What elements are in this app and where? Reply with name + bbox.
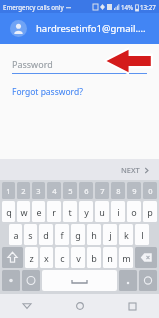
staticText: e [36, 206, 42, 218]
staticText: w [20, 206, 28, 218]
staticText: 9 [132, 186, 137, 196]
staticText: c [60, 252, 65, 264]
button[interactable]: hardresetinfo1@gmail.... [0, 13, 159, 44]
staticText: g [75, 229, 81, 241]
staticText: b [91, 252, 97, 264]
staticText: i [117, 206, 120, 218]
button[interactable]: k [119, 224, 133, 245]
button[interactable]: 9 [127, 182, 141, 199]
button[interactable]: Period [119, 270, 137, 291]
staticText: f [60, 229, 64, 241]
staticText: Forgot password? [12, 86, 83, 98]
staticText: d [43, 229, 49, 241]
button[interactable]: 7 [95, 182, 109, 199]
button[interactable]: v [71, 247, 85, 268]
staticText: 0 [148, 186, 153, 196]
button[interactable]: m [119, 247, 133, 268]
button[interactable]: s [24, 224, 37, 245]
staticText: k [124, 229, 129, 241]
button[interactable]: o [127, 201, 141, 222]
button[interactable]: i [111, 201, 125, 222]
staticText: 4 [52, 186, 57, 196]
staticText: y [84, 206, 89, 218]
button[interactable]: 3 [32, 182, 45, 199]
staticText: a [13, 229, 19, 241]
button[interactable]: Back [0, 294, 53, 318]
staticText: 3 [36, 186, 41, 196]
button[interactable]: z [25, 247, 38, 268]
button[interactable]: d [39, 224, 53, 245]
button[interactable]: 2 [17, 182, 30, 199]
button[interactable]: Shift [2, 247, 23, 268]
staticText: v [76, 252, 81, 264]
staticText: n [107, 252, 113, 264]
button[interactable]: x [40, 247, 53, 268]
staticText: 2 [21, 186, 26, 196]
staticText: 14% [121, 3, 134, 11]
button[interactable]: Recents [106, 294, 159, 318]
button[interactable]: q [2, 201, 15, 222]
button[interactable]: h [87, 224, 101, 245]
button[interactable]: u [95, 201, 109, 222]
button[interactable]: 5 [63, 182, 77, 199]
button[interactable]: Enter [139, 270, 157, 291]
staticText: z [29, 252, 34, 264]
button[interactable]: c [55, 247, 69, 268]
button[interactable]: Home [53, 294, 106, 318]
staticText: 8 [116, 186, 121, 196]
button[interactable]: r [47, 201, 61, 222]
button[interactable]: Symbols [2, 270, 20, 291]
staticText: hardresetinfo1@gmail.... [36, 22, 146, 35]
button[interactable]: a [9, 224, 22, 245]
button[interactable]: 6 [79, 182, 93, 199]
button[interactable]: 8 [111, 182, 125, 199]
staticText: 6 [84, 186, 89, 196]
staticText: u [99, 206, 105, 218]
button[interactable]: Forgot password? [12, 86, 83, 98]
button[interactable]: Space [42, 270, 117, 291]
staticText: s [28, 229, 33, 241]
staticText: 7 [100, 186, 105, 196]
staticText: Emergency calls only [3, 3, 64, 11]
button[interactable]: l [135, 224, 149, 245]
staticText: j [109, 229, 112, 241]
button[interactable]: NEXT [111, 161, 159, 179]
button[interactable]: n [103, 247, 117, 268]
button[interactable]: y [79, 201, 93, 222]
staticText: h [91, 229, 97, 241]
staticText: p [147, 206, 153, 218]
button[interactable]: g [71, 224, 85, 245]
staticText: q [6, 206, 12, 218]
button[interactable]: t [63, 201, 77, 222]
staticText: NEXT [121, 165, 140, 175]
staticText: t [68, 206, 72, 218]
button[interactable]: Emoji [22, 270, 40, 291]
staticText: x [44, 252, 49, 264]
button[interactable]: j [103, 224, 117, 245]
button[interactable]: b [87, 247, 101, 268]
staticText: l [141, 229, 144, 241]
staticText: r [52, 206, 56, 218]
button[interactable]: e [32, 201, 45, 222]
staticText: 13:27 [140, 3, 156, 11]
staticText: Password [12, 58, 53, 70]
button[interactable]: 1 [2, 182, 15, 199]
button[interactable]: 0 [143, 182, 157, 199]
staticText: o [131, 206, 137, 218]
button[interactable]: 4 [47, 182, 61, 199]
button[interactable]: w [17, 201, 30, 222]
button[interactable]: p [143, 201, 157, 222]
button[interactable]: Backspace [135, 247, 157, 268]
button[interactable]: Password [12, 58, 147, 74]
staticText: 5 [68, 186, 73, 196]
button[interactable]: f [55, 224, 69, 245]
staticText: m [122, 252, 131, 264]
staticText: 1 [6, 186, 11, 196]
